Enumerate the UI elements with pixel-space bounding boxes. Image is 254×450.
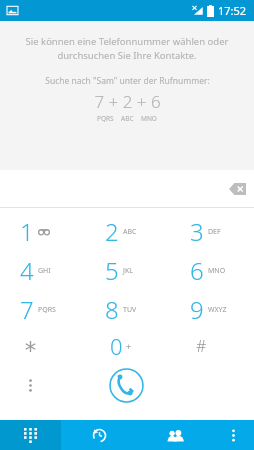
button[interactable]: Call history bbox=[61, 420, 137, 450]
staticText: 7 + 2 + 6 bbox=[94, 90, 161, 113]
button[interactable]: Backspace bbox=[220, 172, 254, 206]
staticText: ABC bbox=[121, 114, 134, 123]
staticText: 8 bbox=[105, 293, 119, 326]
button[interactable]: Call bbox=[84, 363, 169, 407]
button[interactable] bbox=[0, 329, 84, 363]
staticText: JKL bbox=[123, 266, 133, 276]
button[interactable]: 2 bbox=[84, 212, 169, 251]
button[interactable]: 7 bbox=[0, 290, 84, 329]
staticText: 2 bbox=[105, 215, 119, 248]
staticText: 5 bbox=[105, 254, 119, 287]
button[interactable]: Keypad bbox=[0, 420, 61, 450]
button[interactable]: 5 bbox=[84, 251, 169, 290]
staticText: 17:52 bbox=[218, 3, 247, 18]
staticText: Suche nach "Sam" unter der Rufnummer: bbox=[45, 75, 210, 87]
staticText: 0 bbox=[110, 331, 123, 361]
button[interactable]: 8 bbox=[84, 290, 169, 329]
button[interactable]: 3 bbox=[169, 212, 254, 251]
staticText: 3 bbox=[190, 215, 204, 248]
staticText: PQRS bbox=[97, 114, 114, 123]
staticText: GHI bbox=[38, 266, 51, 276]
button[interactable]: 9 bbox=[169, 290, 254, 329]
button[interactable]: 4 bbox=[0, 251, 84, 290]
button[interactable]: 1 bbox=[0, 212, 84, 251]
staticText: 1 bbox=[20, 215, 34, 248]
staticText: 7 bbox=[20, 293, 34, 326]
staticText: MNO bbox=[208, 266, 226, 276]
staticText: ABC bbox=[123, 227, 137, 237]
button[interactable]: 6 bbox=[169, 251, 254, 290]
staticText: MNO bbox=[141, 114, 157, 123]
staticText: 4 bbox=[20, 254, 34, 287]
staticText: WXYZ bbox=[208, 305, 227, 315]
button[interactable]: # bbox=[169, 329, 254, 363]
staticText: DEF bbox=[208, 227, 221, 237]
staticText: 6 bbox=[190, 254, 204, 287]
staticText: PQRS bbox=[38, 305, 56, 315]
staticText: Sie können eine Telefonnummer wählen ode… bbox=[20, 35, 234, 62]
staticText: 9 bbox=[190, 293, 204, 326]
staticText: # bbox=[196, 335, 207, 357]
staticText: TUV bbox=[123, 305, 137, 315]
button[interactable]: More options bbox=[0, 363, 84, 407]
button[interactable]: 0 bbox=[84, 329, 169, 363]
button[interactable]: More options bbox=[213, 420, 254, 450]
staticText: + bbox=[126, 340, 132, 352]
button[interactable]: Contacts bbox=[137, 420, 213, 450]
